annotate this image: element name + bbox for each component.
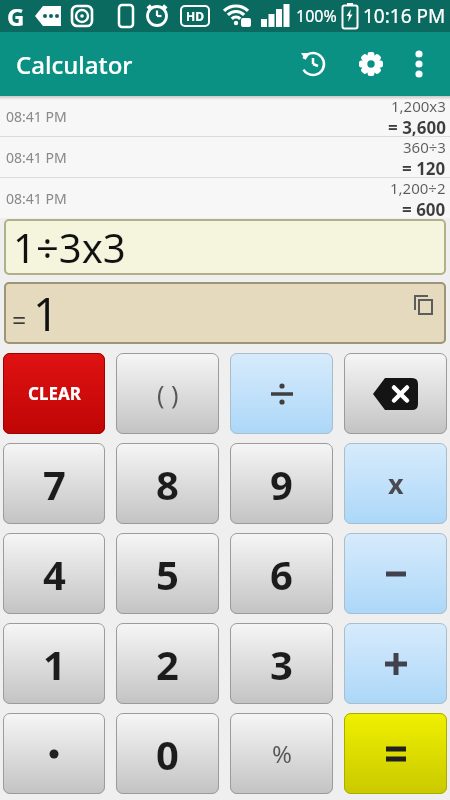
button[interactable]: 8 (116, 443, 219, 524)
staticText: 3 (270, 637, 293, 691)
button[interactable] (344, 713, 447, 794)
button[interactable]: 4 (3, 533, 105, 614)
staticText: = 600 (402, 198, 446, 218)
staticText: Calculator (16, 48, 133, 81)
button[interactable]: 3 (230, 623, 333, 704)
button[interactable]: 0 (116, 713, 219, 794)
staticText: 1÷3x3 (13, 220, 126, 274)
button[interactable] (344, 353, 447, 434)
staticText: 10:16 PM (363, 3, 446, 29)
staticText: 0 (156, 727, 179, 781)
staticText: 6 (270, 547, 293, 601)
staticText: G (7, 0, 25, 32)
button[interactable]: CLEAR (3, 353, 105, 434)
staticText: 08:41 PM (6, 148, 67, 167)
staticText: = (12, 303, 33, 337)
button[interactable]: 6 (230, 533, 333, 614)
staticText: = 120 (402, 157, 446, 177)
button[interactable]: 08:41 PM (0, 137, 450, 177)
staticText: HD (186, 8, 204, 24)
button[interactable]: 9 (230, 443, 333, 524)
button[interactable] (289, 40, 337, 88)
button[interactable] (230, 353, 333, 434)
staticText: CLEAR (28, 382, 81, 405)
staticText: 8 (156, 457, 179, 511)
staticText: 4 (43, 547, 66, 601)
staticText: 7 (43, 457, 66, 511)
staticText: 08:41 PM (6, 107, 67, 126)
staticText: 1 (33, 283, 59, 344)
button[interactable] (3, 713, 105, 794)
button[interactable]: x (344, 443, 447, 524)
button[interactable] (344, 533, 447, 614)
button[interactable]: 2 (116, 623, 219, 704)
staticText: 360÷3 (403, 137, 446, 157)
staticText: 08:41 PM (6, 189, 67, 208)
button[interactable] (347, 40, 395, 88)
staticText: 2 (156, 637, 179, 691)
staticText: 1 (43, 637, 66, 691)
button[interactable]: 08:41 PM (0, 178, 450, 218)
staticText: 1,200x3 (391, 96, 446, 116)
button[interactable]: 7 (3, 443, 105, 524)
button[interactable]: ( ) (116, 353, 219, 434)
staticText: % (272, 737, 292, 770)
staticText: 1,200÷2 (390, 178, 446, 198)
button[interactable] (401, 46, 437, 82)
button[interactable] (344, 623, 447, 704)
staticText: = 3,600 (388, 116, 446, 136)
staticText: 5 (156, 547, 179, 601)
button[interactable]: 08:41 PM (0, 96, 450, 136)
button[interactable]: % (230, 713, 333, 794)
button[interactable]: 5 (116, 533, 219, 614)
staticText: 9 (270, 457, 293, 511)
staticText: 100% (296, 5, 337, 27)
staticText: ( ) (157, 377, 179, 411)
staticText: x (388, 465, 404, 502)
button[interactable]: 1 (3, 623, 105, 704)
